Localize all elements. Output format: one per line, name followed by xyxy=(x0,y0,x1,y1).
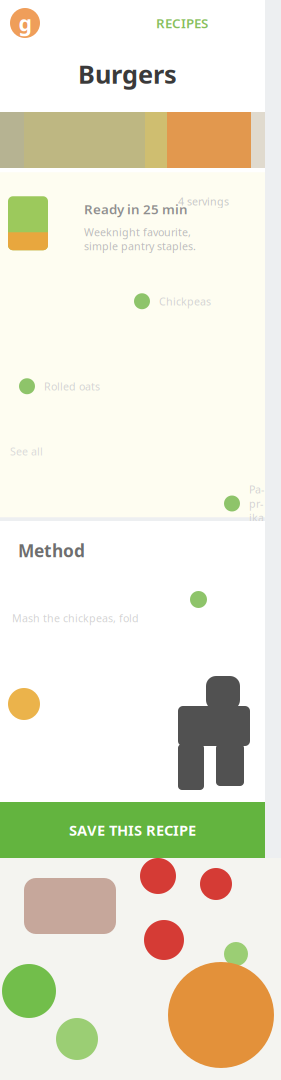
staticText: Ready in 25 min xyxy=(84,200,188,218)
staticText: SAVE THIS RECIPE xyxy=(69,820,196,840)
staticText: Burgers xyxy=(78,57,177,91)
staticText: See all xyxy=(10,444,43,458)
staticText: 4 servings xyxy=(178,194,229,208)
staticText: Method xyxy=(18,539,85,562)
staticText: Weeknight favourite, simple pantry stapl… xyxy=(84,225,196,253)
staticText: g xyxy=(18,9,31,37)
staticText: Rolled oats xyxy=(44,379,100,393)
button[interactable]: RECIPES xyxy=(146,5,218,41)
button[interactable]: SAVE THIS RECIPE xyxy=(0,802,265,858)
staticText: Mash the chickpeas, fold xyxy=(12,611,139,625)
staticText: Chickpeas xyxy=(159,294,211,308)
staticText: Paprika xyxy=(249,482,264,525)
staticText: RECIPES xyxy=(156,14,208,32)
button[interactable]: Home xyxy=(3,1,47,45)
